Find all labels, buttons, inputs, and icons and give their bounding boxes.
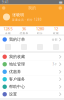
- staticText: 客户服务: [9, 77, 25, 82]
- button[interactable]: 优惠券: [0, 68, 64, 75]
- staticText: 优惠券: [9, 69, 21, 74]
- button[interactable]: 我的订单: [0, 36, 64, 43]
- staticText: 收藏: [53, 32, 59, 35]
- staticText: 我的收藏: [9, 54, 25, 59]
- button[interactable]: 128.5: [0, 26, 16, 35]
- button[interactable]: 地址管理: [0, 60, 64, 68]
- staticText: 128.5: [3, 26, 12, 31]
- staticText: 9:41: [2, 0, 9, 4]
- staticText: 12: [54, 26, 58, 31]
- staticText: 地址管理: [9, 62, 25, 67]
- button[interactable]: 12: [48, 26, 64, 35]
- staticText: 积分: [37, 32, 43, 35]
- staticText: 优惠券: [19, 32, 28, 35]
- staticText: 余额: [5, 32, 11, 35]
- staticText: ▮▮▮: [59, 1, 62, 4]
- staticText: 3个: [52, 62, 57, 66]
- button[interactable]: Back: [2, 6, 5, 10]
- button[interactable]: 设置: [0, 90, 64, 98]
- staticText: 帮助中心: [9, 84, 25, 89]
- button[interactable]: 帮助中心: [0, 83, 64, 90]
- button[interactable]: 客户服务: [0, 75, 64, 83]
- staticText: 我的订单: [9, 37, 25, 42]
- staticText: 张晓明: [12, 12, 24, 17]
- staticText: 设置: [9, 92, 17, 97]
- staticText: 我的: [28, 5, 36, 10]
- staticText: 普通会员 · 积分 1280: [12, 18, 42, 21]
- staticText: 36: [22, 26, 26, 31]
- button[interactable]: Settings: [59, 6, 62, 10]
- button[interactable]: 我的收藏: [0, 53, 64, 60]
- staticText: 1280: [36, 26, 44, 31]
- button[interactable]: 1280: [32, 26, 48, 35]
- staticText: 全部: [52, 38, 58, 41]
- button[interactable]: 36: [16, 26, 32, 35]
